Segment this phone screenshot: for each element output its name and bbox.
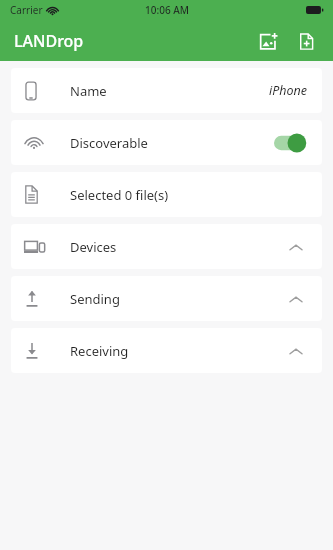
button[interactable]: Add image — [253, 26, 283, 56]
staticText: Devices — [70, 238, 117, 256]
button[interactable]: Receiving — [11, 328, 322, 373]
button[interactable]: Collapse — [284, 235, 308, 259]
button[interactable]: Collapse — [284, 287, 308, 311]
button[interactable]: Devices — [11, 224, 322, 269]
staticText: Receiving — [70, 342, 129, 360]
button[interactable]: Discoverable — [11, 120, 322, 165]
staticText: Selected 0 file(s) — [70, 186, 169, 204]
staticText: Carrier — [10, 3, 43, 17]
button[interactable]: Selected 0 file(s) — [11, 172, 322, 217]
staticText: Discoverable — [70, 134, 148, 152]
button[interactable]: Sending — [11, 276, 322, 321]
staticText: LANDrop — [14, 30, 84, 52]
button[interactable]: Collapse — [284, 339, 308, 363]
staticText: iPhone — [269, 82, 308, 99]
button[interactable]: Name — [11, 68, 322, 113]
staticText: Sending — [70, 290, 120, 308]
button[interactable]: Discoverable toggle — [274, 133, 308, 153]
staticText: Name — [70, 82, 107, 100]
button[interactable]: Add file — [291, 26, 321, 56]
staticText: 10:06 AM — [145, 3, 189, 17]
